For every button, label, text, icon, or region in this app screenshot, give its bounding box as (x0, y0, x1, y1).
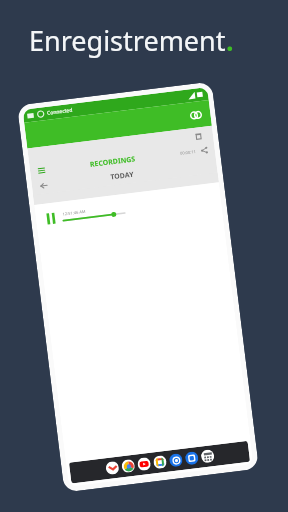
other: Pause (43, 210, 59, 226)
button[interactable]: Menu (36, 165, 47, 176)
button[interactable]: App (137, 457, 151, 471)
button[interactable]: Share (199, 145, 209, 155)
button[interactable]: App (121, 459, 135, 473)
button[interactable]: Link (186, 106, 204, 124)
button[interactable]: Back (37, 179, 51, 192)
button[interactable]: Delete (191, 129, 206, 143)
staticText: 12:51:46 AM (62, 209, 87, 217)
staticText: TODAY (110, 170, 135, 183)
staticText: 00:00:11 (180, 149, 196, 156)
staticText: Enregistrement (29, 22, 226, 59)
button[interactable]: App (169, 453, 183, 467)
staticText: RECORDINGS (89, 154, 136, 170)
button[interactable]: Pause (34, 182, 222, 235)
button[interactable]: App (200, 449, 215, 463)
button[interactable]: App (153, 455, 167, 469)
staticText: . (226, 22, 234, 59)
button[interactable]: App (184, 451, 199, 465)
button[interactable]: App (105, 461, 120, 475)
staticText: Connected (47, 107, 73, 117)
